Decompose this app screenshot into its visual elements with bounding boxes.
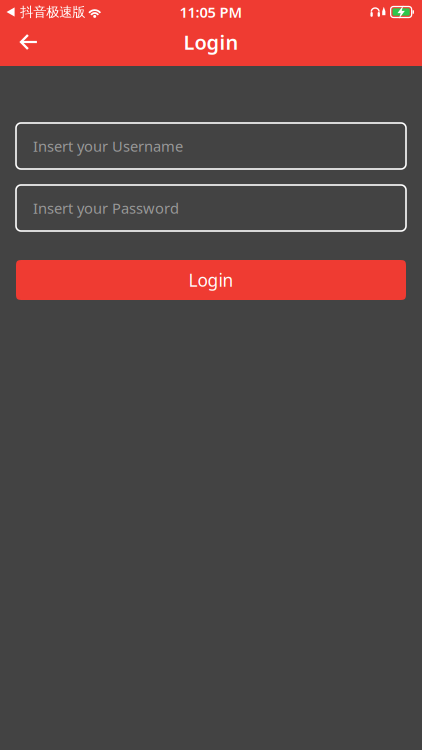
staticText: 11:05 PM [179, 2, 242, 22]
staticText: Insert your Username [33, 136, 183, 156]
staticText: 抖音极速版 [20, 4, 85, 20]
staticText: Login [183, 29, 238, 55]
staticText: Insert your Password [33, 198, 179, 218]
staticText: Login [188, 268, 233, 291]
button[interactable]: Insert your Username [16, 123, 406, 169]
button[interactable]: Back [0, 24, 57, 60]
button[interactable]: Login [16, 260, 406, 300]
button[interactable]: Insert your Password [16, 185, 406, 231]
